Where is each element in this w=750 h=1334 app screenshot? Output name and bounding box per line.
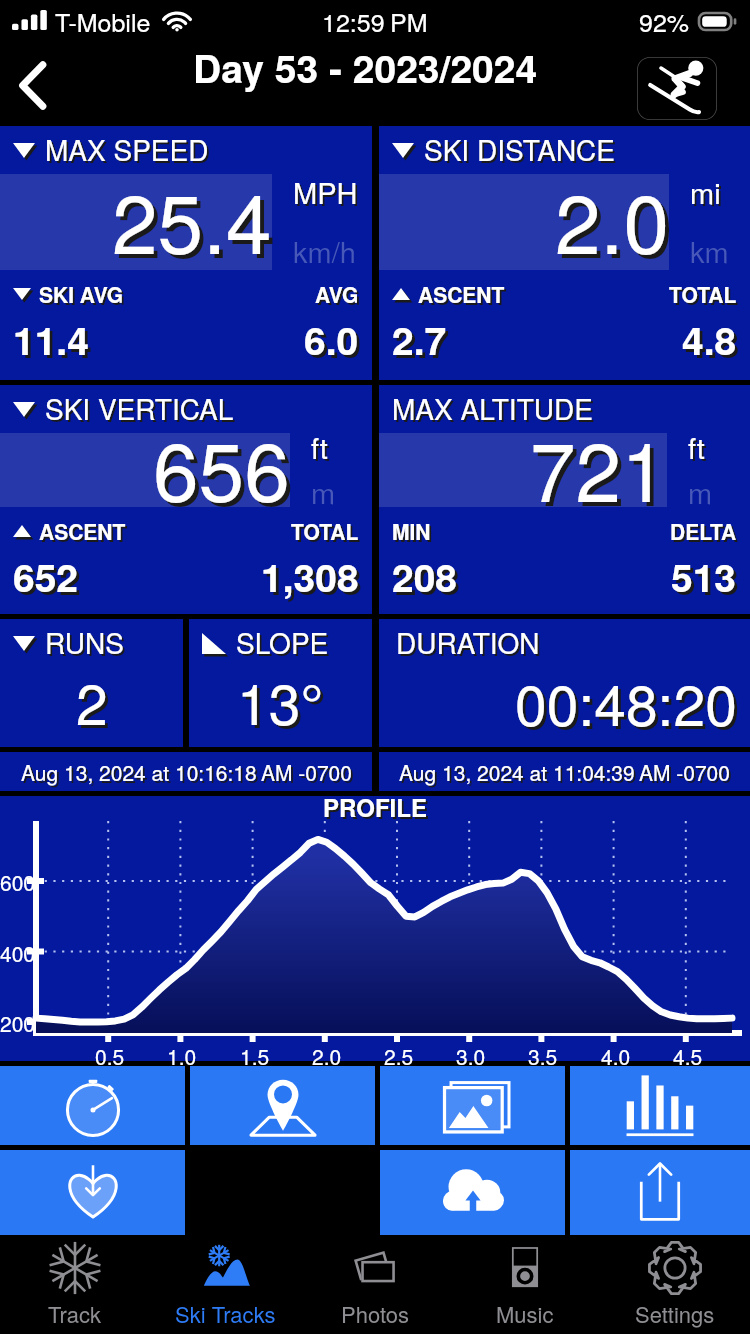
- staticText: 4.8: [685, 314, 740, 370]
- staticText: 652: [13, 548, 79, 604]
- staticText: Photos: [341, 1298, 410, 1330]
- staticText: 400: [0, 938, 36, 968]
- staticText: ASCENT: [39, 516, 126, 546]
- staticText: PROFILE: [323, 790, 427, 824]
- staticText: 2.7: [395, 314, 450, 370]
- button[interactable]: Back: [0, 45, 74, 126]
- staticText: km/h: [293, 230, 356, 272]
- staticText: 6.0: [304, 311, 359, 367]
- button[interactable]: Music: [450, 1235, 600, 1334]
- staticText: 11.4: [16, 314, 92, 370]
- staticText: 4.8: [682, 311, 737, 367]
- staticText: 3.5: [528, 1041, 558, 1071]
- button[interactable]: Settings: [600, 1235, 750, 1334]
- button[interactable]: MAX SPEED: [0, 126, 372, 380]
- staticText: 513: [674, 551, 740, 607]
- staticText: m: [688, 471, 713, 513]
- staticText: SKI AVG: [41, 281, 126, 311]
- button[interactable]: DURATION: [379, 619, 750, 747]
- staticText: SLOPE: [238, 624, 331, 664]
- button[interactable]: SKI DISTANCE: [379, 126, 750, 380]
- staticText: TOTAL: [669, 279, 737, 309]
- staticText: 513: [671, 548, 737, 604]
- staticText: 2.0: [312, 1041, 342, 1071]
- staticText: 4.5: [673, 1041, 703, 1071]
- staticText: 2: [76, 660, 108, 740]
- staticText: Aug 13, 2024 at 10:16:18 AM -0700: [23, 759, 354, 789]
- staticText: TOTAL: [291, 516, 359, 546]
- button[interactable]: Ski Tracks: [150, 1235, 300, 1334]
- staticText: 25.4: [116, 164, 276, 281]
- staticText: SKI AVG: [39, 279, 124, 309]
- button[interactable]: Statistics: [570, 1066, 750, 1145]
- staticText: mi: [692, 173, 723, 215]
- staticText: 200: [0, 1008, 36, 1038]
- staticText: m: [311, 471, 336, 513]
- staticText: Music: [496, 1298, 554, 1330]
- button[interactable]: SLOPE: [189, 619, 372, 747]
- staticText: 00:48:20: [515, 661, 737, 741]
- staticText: SKI DISTANCE: [426, 131, 617, 171]
- staticText: ft: [313, 428, 330, 470]
- staticText: 92%: [639, 3, 690, 39]
- button[interactable]: SKI VERTICAL: [0, 385, 372, 614]
- staticText: Day 53 - 2023/2024: [193, 39, 538, 95]
- staticText: 25.4: [112, 160, 272, 277]
- staticText: ASCENT: [420, 281, 507, 311]
- staticText: 4.0: [601, 1041, 631, 1071]
- button[interactable]: RUNS: [0, 619, 183, 747]
- button[interactable]: Aug 13, 2024 at 10:16:18 AM -0700: [0, 752, 372, 791]
- staticText: 721: [534, 412, 671, 529]
- staticText: ft: [311, 426, 328, 468]
- button[interactable]: Aug 13, 2024 at 11:04:39 AM -0700: [379, 752, 750, 791]
- staticText: 721: [530, 408, 667, 525]
- staticText: SLOPE: [236, 622, 329, 662]
- staticText: Aug 13, 2024 at 11:04:39 AM -0700: [401, 759, 732, 789]
- button[interactable]: Map: [190, 1066, 375, 1145]
- button[interactable]: Ski activity: [637, 57, 717, 120]
- staticText: TOTAL: [671, 281, 739, 311]
- staticText: MAX ALTITUDE: [392, 388, 593, 428]
- staticText: ft: [690, 428, 707, 470]
- staticText: 2.0: [555, 160, 669, 277]
- button[interactable]: Upload: [380, 1150, 565, 1235]
- button[interactable]: Photos: [380, 1066, 565, 1145]
- button[interactable]: Share: [570, 1150, 750, 1235]
- button[interactable]: PROFILE: [0, 796, 750, 1061]
- staticText: 2.0: [559, 164, 673, 281]
- staticText: Aug 13, 2024 at 10:16:18 AM -0700: [21, 757, 352, 787]
- staticText: ASCENT: [418, 279, 505, 309]
- staticText: MIN: [394, 518, 433, 548]
- button[interactable]: MAX ALTITUDE: [379, 385, 750, 614]
- staticText: MIN: [392, 516, 431, 546]
- staticText: PROFILE: [325, 792, 429, 826]
- staticText: AVG: [317, 281, 361, 311]
- button[interactable]: Stopwatch: [0, 1066, 185, 1145]
- staticText: Track: [48, 1298, 102, 1330]
- button[interactable]: Track: [0, 1235, 150, 1334]
- staticText: SKI VERTICAL: [47, 390, 236, 430]
- staticText: 656: [153, 408, 290, 525]
- button[interactable]: Health: [0, 1150, 185, 1235]
- staticText: MAX SPEED: [47, 131, 211, 171]
- staticText: DELTA: [672, 518, 739, 548]
- staticText: SKI VERTICAL: [45, 388, 234, 428]
- staticText: Ski Tracks: [175, 1298, 276, 1330]
- staticText: 1,308: [261, 548, 359, 604]
- staticText: PM: [390, 3, 428, 39]
- staticText: 208: [395, 551, 461, 607]
- staticText: 00:48:20: [518, 664, 740, 744]
- staticText: MPH: [293, 171, 358, 213]
- staticText: ASCENT: [41, 518, 128, 548]
- staticText: 13°: [237, 660, 324, 740]
- button[interactable]: Photos: [300, 1235, 450, 1334]
- staticText: 2: [79, 663, 111, 743]
- staticText: 208: [392, 548, 458, 604]
- staticText: 600: [0, 867, 36, 897]
- staticText: MPH: [295, 173, 360, 215]
- staticText: 1,308: [264, 551, 362, 607]
- staticText: DURATION: [398, 624, 542, 664]
- staticText: RUNS: [47, 624, 126, 664]
- staticText: 1.5: [240, 1041, 270, 1071]
- staticText: 1.0: [167, 1041, 197, 1071]
